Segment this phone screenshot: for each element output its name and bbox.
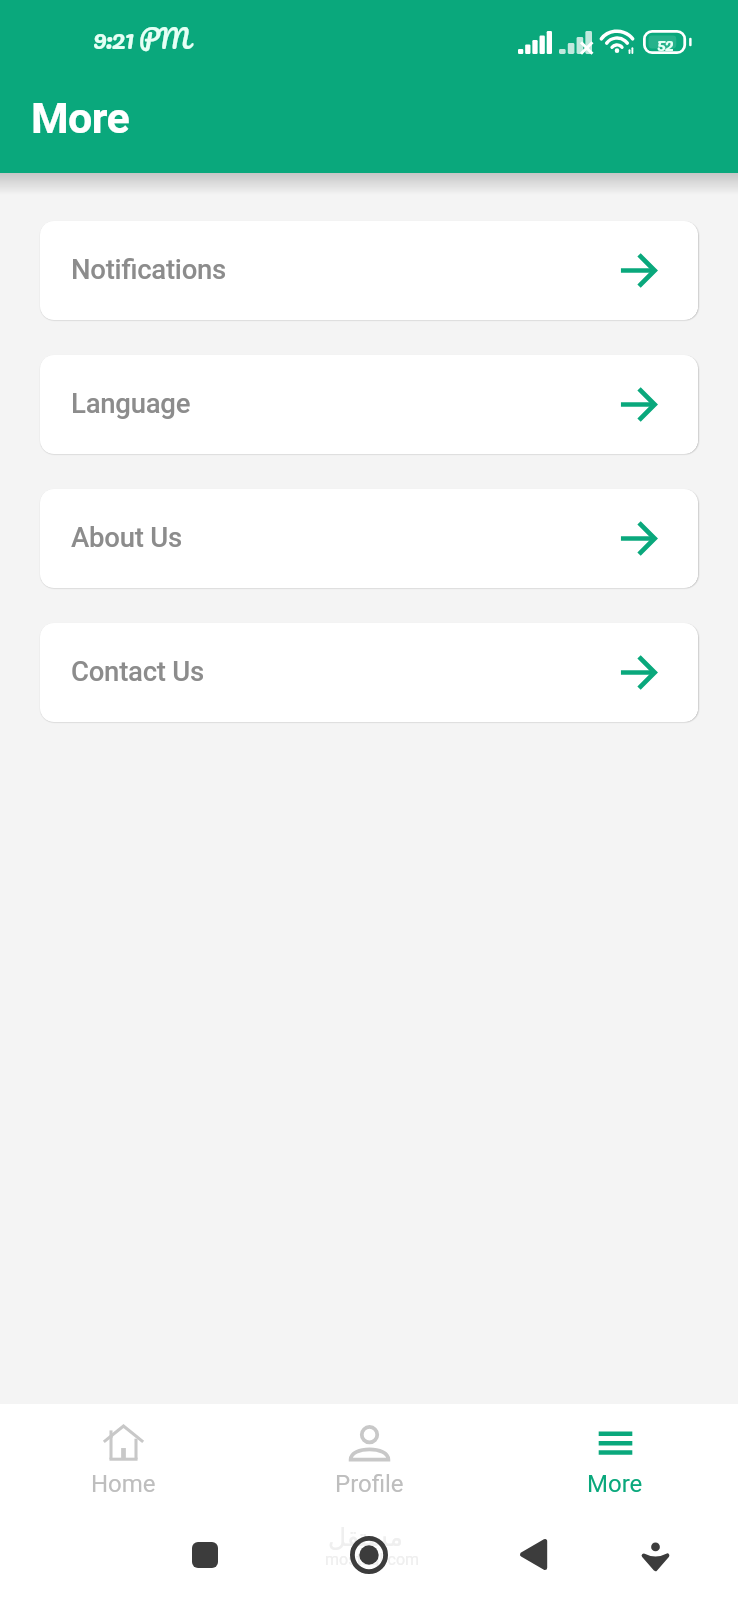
staticText: More [587, 1470, 643, 1498]
staticText: مستقل [328, 1523, 403, 1552]
staticText: mostaql.com [325, 1550, 420, 1569]
button[interactable]: Recent apps [192, 1542, 218, 1568]
staticText: About Us [71, 521, 182, 553]
staticText: Profile [335, 1470, 404, 1498]
staticText: 52 [657, 29, 673, 53]
staticText: PM [139, 15, 188, 61]
button[interactable]: Home [350, 1536, 388, 1574]
staticText: Contact Us [71, 655, 205, 687]
button[interactable]: Language [40, 355, 698, 454]
staticText: Notifications [71, 253, 227, 285]
staticText: Language [71, 387, 191, 419]
button[interactable]: Back [520, 1539, 545, 1570]
button[interactable]: Hide navigation [643, 1541, 668, 1569]
staticText: 9:21 [93, 15, 134, 61]
button[interactable]: About Us [40, 489, 698, 588]
button[interactable]: Notifications [40, 221, 698, 320]
staticText: Home [91, 1470, 156, 1498]
button[interactable]: More [492, 1404, 738, 1512]
button[interactable]: Profile [246, 1404, 492, 1512]
button[interactable]: Home [0, 1404, 246, 1512]
staticText: More [31, 93, 130, 143]
button[interactable]: Contact Us [40, 623, 698, 722]
